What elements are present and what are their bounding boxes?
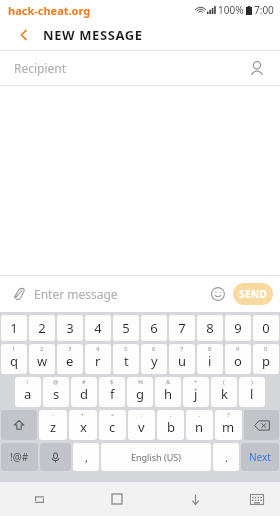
button[interactable]: Attach xyxy=(8,283,30,305)
staticText: v xyxy=(138,418,145,436)
staticText: 4 xyxy=(94,319,102,337)
staticText: English (US) xyxy=(131,451,181,463)
button[interactable]: 7 xyxy=(169,315,195,341)
button[interactable]: 2 xyxy=(29,315,55,341)
button[interactable]: 3 xyxy=(57,315,83,341)
button[interactable]: Add contact xyxy=(246,57,268,79)
staticText: 7:00 xyxy=(254,3,274,17)
staticText: w xyxy=(37,352,48,370)
staticText: i xyxy=(208,352,212,370)
staticText: q xyxy=(10,352,18,370)
button[interactable]: ; xyxy=(157,410,184,440)
staticText: p xyxy=(262,352,270,370)
button[interactable]: English (US) xyxy=(101,443,211,471)
button[interactable]: 5 xyxy=(113,344,139,374)
button[interactable]: Hide keyboard xyxy=(156,482,234,516)
staticText: 2 xyxy=(38,319,46,337)
button[interactable]: 1 xyxy=(1,315,27,341)
staticText: 9 xyxy=(234,319,242,337)
staticText: g xyxy=(136,385,144,403)
button[interactable]: 9 xyxy=(225,344,251,374)
button[interactable]: - xyxy=(39,410,67,440)
staticText: hack-cheat.org xyxy=(8,3,91,18)
staticText: 4 xyxy=(96,345,100,353)
staticText: ; xyxy=(170,411,172,419)
staticText: s xyxy=(53,385,60,403)
button[interactable]: 8 xyxy=(197,315,223,341)
staticText: Next xyxy=(249,450,271,464)
staticText: ) xyxy=(251,378,253,386)
staticText: 5 xyxy=(122,319,130,337)
staticText: j xyxy=(194,385,198,403)
button[interactable]: 0 xyxy=(253,344,279,374)
button[interactable]: 2 xyxy=(29,344,55,374)
button[interactable]: 9 xyxy=(225,315,251,341)
staticText: 6 xyxy=(150,319,158,337)
button[interactable]: 0 xyxy=(253,315,279,341)
button[interactable]: Next xyxy=(241,443,279,471)
button[interactable]: Home xyxy=(78,482,156,516)
button[interactable]: , xyxy=(73,443,99,471)
staticText: $ xyxy=(110,378,114,386)
staticText: & xyxy=(166,378,171,386)
button[interactable]: Voice input xyxy=(40,443,71,471)
button[interactable]: Emoji xyxy=(207,283,229,305)
staticText: b xyxy=(167,418,175,436)
button[interactable]: % xyxy=(127,377,153,407)
staticText: : xyxy=(141,411,143,419)
button[interactable]: ) xyxy=(239,377,265,407)
staticText: @ xyxy=(53,378,59,386)
button[interactable]: , xyxy=(186,410,213,440)
staticText: 2 xyxy=(40,345,44,353)
staticText: 3 xyxy=(66,319,74,337)
staticText: Enter message xyxy=(34,286,207,302)
button[interactable]: !@# xyxy=(1,443,38,471)
button[interactable]: Recent apps xyxy=(0,482,78,516)
button[interactable]: Keyboard settings xyxy=(234,482,280,516)
button[interactable]: # xyxy=(71,377,97,407)
button[interactable]: Recipient xyxy=(0,51,280,85)
button[interactable]: : xyxy=(128,410,155,440)
staticText: m xyxy=(222,418,235,436)
staticText: a xyxy=(24,385,32,403)
button[interactable]: SEND xyxy=(233,283,273,305)
button[interactable]: ? xyxy=(215,410,242,440)
button[interactable]: ( xyxy=(211,377,237,407)
button[interactable]: Backspace xyxy=(244,410,279,440)
button[interactable]: 7 xyxy=(169,344,195,374)
staticText: r xyxy=(95,352,101,370)
button[interactable]: 8 xyxy=(197,344,223,374)
button[interactable]: $ xyxy=(99,377,125,407)
button[interactable]: 4 xyxy=(85,315,111,341)
button[interactable]: 4 xyxy=(85,344,111,374)
staticText: . xyxy=(225,450,228,465)
button[interactable]: 5 xyxy=(113,315,139,341)
staticText: , xyxy=(85,450,88,465)
staticText: y xyxy=(151,352,158,370)
staticText: d xyxy=(80,385,88,403)
button[interactable]: 1 xyxy=(1,344,27,374)
button[interactable]: Shift xyxy=(1,410,37,440)
button[interactable]: & xyxy=(155,377,181,407)
staticText: 3 xyxy=(68,345,72,353)
staticText: 6 xyxy=(152,345,156,353)
button[interactable]: * xyxy=(183,377,209,407)
staticText: 8 xyxy=(206,319,214,337)
button[interactable]: Back xyxy=(14,25,34,45)
staticText: f xyxy=(110,385,115,403)
button[interactable]: + xyxy=(69,410,97,440)
staticText: x xyxy=(80,418,87,436)
staticText: 1 xyxy=(12,345,16,353)
button[interactable]: ! xyxy=(15,377,41,407)
staticText: c xyxy=(109,418,116,436)
staticText: * xyxy=(194,378,198,386)
button[interactable]: 6 xyxy=(141,344,167,374)
button[interactable]: = xyxy=(99,410,126,440)
button[interactable]: @ xyxy=(43,377,69,407)
staticText: 0 xyxy=(262,319,270,337)
button[interactable]: 3 xyxy=(57,344,83,374)
button[interactable]: . xyxy=(213,443,239,471)
staticText: 7 xyxy=(178,319,186,337)
button[interactable]: 6 xyxy=(141,315,167,341)
staticText: t xyxy=(124,352,129,370)
